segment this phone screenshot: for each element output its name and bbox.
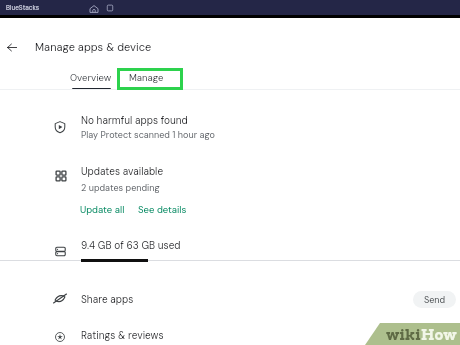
staticText: 9.4 GB of 63 GB used — [81, 239, 181, 252]
staticText: Overview — [70, 72, 112, 84]
button[interactable]: See details — [134, 201, 191, 219]
button[interactable]: Send — [413, 291, 456, 308]
staticText: Updates available — [81, 165, 164, 178]
button[interactable]: Back — [2, 37, 22, 57]
staticText: 2 updates pending — [81, 182, 160, 194]
button[interactable]: Manage — [116, 66, 177, 89]
button[interactable]: Home — [89, 4, 99, 12]
staticText: No harmful apps found — [81, 114, 188, 127]
staticText: Send — [424, 294, 446, 306]
button[interactable]: No harmful apps found — [0, 106, 460, 146]
button[interactable]: 9.4 GB of 63 GB used — [0, 230, 460, 264]
staticText: Manage — [129, 72, 164, 84]
staticText: Ratings & reviews — [81, 329, 164, 342]
button[interactable]: Share apps — [0, 283, 460, 315]
staticText: How — [421, 326, 457, 344]
button[interactable]: Recent apps — [106, 4, 114, 12]
staticText: Play Protect scanned 1 hour ago — [81, 129, 215, 141]
staticText: BlueStacks — [6, 4, 40, 12]
button[interactable]: Overview — [56, 66, 126, 89]
button[interactable]: Ratings & reviews — [0, 321, 460, 345]
button[interactable]: Update all — [75, 201, 129, 219]
staticText: Share apps — [81, 293, 134, 306]
staticText: Manage apps & device — [35, 40, 152, 54]
button[interactable]: Updates available — [0, 158, 460, 198]
staticText: Update all — [80, 204, 125, 216]
staticText: See details — [138, 204, 187, 216]
staticText: wiki — [386, 326, 421, 344]
